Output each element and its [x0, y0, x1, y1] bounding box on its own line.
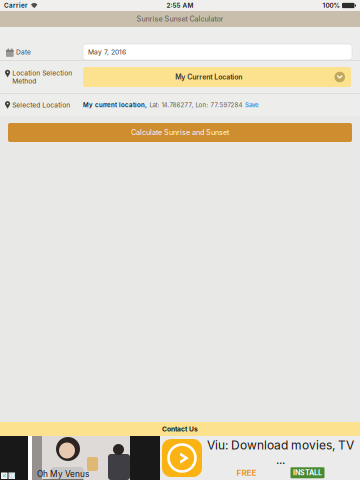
staticText: Date: [16, 48, 31, 56]
staticText: Lat: 14.786277, Lon: 77.597284: [149, 101, 242, 109]
staticText: 2:55 AM: [166, 2, 193, 9]
button[interactable]: May 7, 2016: [83, 44, 352, 60]
staticText: Sunrise Sunset Calculator: [136, 15, 223, 23]
button[interactable]: Contact Us: [0, 422, 360, 436]
staticText: Contact Us: [162, 425, 198, 433]
button[interactable]: Calculate Sunrise and Sunset: [8, 123, 352, 142]
staticText: Oh My Venus: [37, 469, 89, 479]
staticText: ✕: [2, 472, 7, 479]
staticText: Viu: Download movies, TV: [207, 438, 354, 452]
staticText: FREE: [236, 468, 256, 478]
staticText: Location Selection Method: [12, 69, 72, 85]
staticText: My Current Location: [175, 73, 242, 81]
staticText: ...: [276, 452, 285, 467]
button[interactable]: Save: [245, 101, 259, 109]
staticText: May 7, 2016: [88, 48, 126, 56]
staticText: Save: [245, 101, 259, 109]
staticText: Carrier: [4, 2, 28, 9]
button[interactable]: Advertisement: Viu, download movies and …: [0, 436, 360, 480]
staticText: ⓘ: [9, 472, 15, 480]
staticText: Selected Location: [12, 101, 70, 109]
staticText: Calculate Sunrise and Sunset: [131, 128, 229, 137]
staticText: 100%: [322, 2, 339, 9]
staticText: My current location,: [83, 101, 147, 109]
staticText: INSTALL: [293, 468, 322, 477]
button[interactable]: My Current Location: [83, 67, 351, 87]
